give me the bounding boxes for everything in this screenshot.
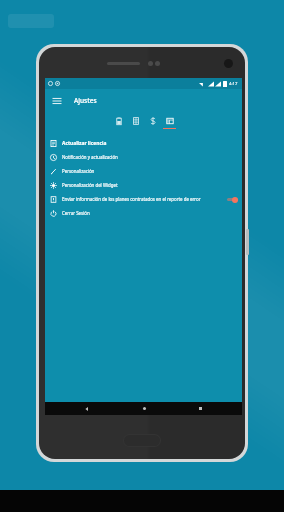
button[interactable]: Cerrar Sesión <box>45 206 242 220</box>
staticText: Notificación y actualización <box>62 154 118 160</box>
button[interactable]: Tab money <box>144 112 161 131</box>
button[interactable]: Tab sim <box>127 112 144 131</box>
button[interactable]: Back <box>72 402 102 415</box>
button[interactable]: Home <box>129 402 159 415</box>
button[interactable]: Personalización del Widget <box>45 178 242 192</box>
button[interactable]: Recent apps <box>185 402 215 415</box>
staticText: Enviar información de los planes contrat… <box>62 196 201 202</box>
button[interactable]: Personalización <box>45 164 242 178</box>
button[interactable]: Tab data <box>161 112 178 131</box>
staticText: Ajustes <box>74 96 97 105</box>
button[interactable]: Tab battery <box>110 112 127 131</box>
staticText: Personalización del Widget <box>62 182 118 188</box>
button[interactable]: Toggle crash report plan info <box>227 196 238 203</box>
staticText: Cerrar Sesión <box>62 210 90 216</box>
staticText: 4:17 <box>229 81 238 87</box>
button[interactable]: Enviar información de los planes contrat… <box>45 192 242 206</box>
button[interactable]: Open navigation menu <box>45 89 68 112</box>
staticText: Actualizar licencia <box>62 140 107 147</box>
staticText: Personalización <box>62 168 95 174</box>
button[interactable]: Actualizar licencia <box>45 136 242 150</box>
button[interactable]: Notificación y actualización <box>45 150 242 164</box>
